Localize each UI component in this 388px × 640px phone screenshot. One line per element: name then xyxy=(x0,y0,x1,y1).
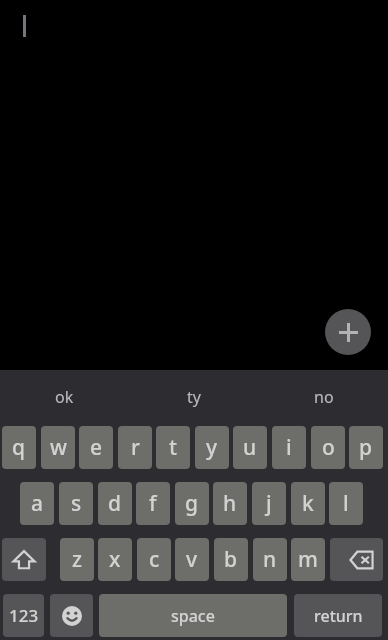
button[interactable]: l xyxy=(329,482,363,525)
staticText: s xyxy=(71,489,82,518)
button[interactable]: z xyxy=(60,538,94,581)
button[interactable]: x xyxy=(98,538,132,581)
button[interactable]: q xyxy=(2,426,36,469)
button[interactable]: n xyxy=(253,538,287,581)
staticText: q xyxy=(12,433,26,462)
button[interactable]: c xyxy=(137,538,171,581)
button[interactable]: i xyxy=(272,426,306,469)
button[interactable]: u xyxy=(233,426,267,469)
button[interactable]: m xyxy=(291,538,325,581)
staticText: j xyxy=(266,489,272,518)
button[interactable]: s xyxy=(59,482,93,525)
button[interactable]: y xyxy=(195,426,229,469)
staticText: i xyxy=(286,433,292,462)
button[interactable]: k xyxy=(291,482,325,525)
staticText: z xyxy=(72,545,83,574)
button[interactable]: d xyxy=(98,482,132,525)
staticText: x xyxy=(109,545,121,574)
button[interactable]: o xyxy=(311,426,345,469)
button[interactable]: g xyxy=(175,482,209,525)
staticText: h xyxy=(223,489,237,518)
button[interactable]: return xyxy=(294,594,382,637)
staticText: e xyxy=(90,433,103,462)
staticText: f xyxy=(149,489,157,518)
button[interactable]: a xyxy=(20,482,54,525)
button[interactable]: Add note xyxy=(325,309,371,355)
staticText: ok xyxy=(55,386,74,408)
button[interactable]: r xyxy=(118,426,152,469)
staticText: v xyxy=(186,545,198,574)
staticText: n xyxy=(263,545,277,574)
staticText: d xyxy=(108,489,122,518)
button[interactable]: ty xyxy=(129,378,258,416)
button[interactable]: e xyxy=(79,426,113,469)
staticText: m xyxy=(298,545,318,574)
staticText: g xyxy=(185,489,199,518)
staticText: o xyxy=(322,433,335,462)
button[interactable]: 123 xyxy=(3,594,44,637)
staticText: a xyxy=(31,489,44,518)
staticText: y xyxy=(206,433,218,462)
staticText: k xyxy=(302,489,314,518)
button[interactable]: h xyxy=(213,482,247,525)
button[interactable]: Backspace xyxy=(330,538,383,581)
staticText: 123 xyxy=(9,604,39,627)
button[interactable]: t xyxy=(156,426,190,469)
staticText: c xyxy=(149,545,160,574)
button[interactable]: b xyxy=(214,538,248,581)
staticText: u xyxy=(243,433,257,462)
button[interactable]: Emoji keyboard xyxy=(50,594,93,637)
staticText: space xyxy=(171,605,215,627)
button[interactable]: no xyxy=(259,378,388,416)
staticText: ty xyxy=(187,386,201,408)
staticText: l xyxy=(343,489,349,518)
staticText: p xyxy=(359,433,373,462)
button[interactable]: w xyxy=(41,426,75,469)
staticText: b xyxy=(224,545,238,574)
staticText: no xyxy=(314,386,334,408)
staticText: return xyxy=(314,605,363,627)
staticText: r xyxy=(131,433,140,462)
staticText: t xyxy=(169,433,178,462)
button[interactable]: ok xyxy=(0,378,129,416)
button[interactable]: f xyxy=(136,482,170,525)
staticText: w xyxy=(50,433,67,462)
button[interactable]: v xyxy=(175,538,209,581)
button[interactable]: p xyxy=(349,426,383,469)
button[interactable]: Shift xyxy=(2,538,46,581)
button[interactable]: space xyxy=(99,594,287,637)
button[interactable]: j xyxy=(252,482,286,525)
